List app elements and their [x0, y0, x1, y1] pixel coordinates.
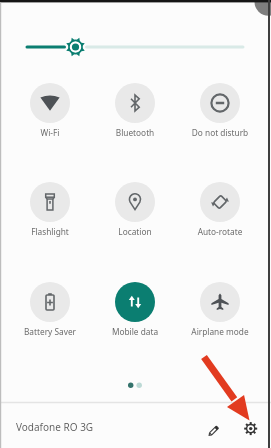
button[interactable]: Bluetooth — [93, 83, 177, 138]
staticText: Bluetooth — [93, 127, 177, 138]
button[interactable]: Airplane mode — [178, 282, 262, 337]
button[interactable] — [203, 417, 227, 441]
staticText: Flashlight — [8, 226, 92, 237]
button[interactable]: Flashlight — [8, 182, 92, 237]
button[interactable]: Battery Saver — [8, 282, 92, 337]
staticText: Wi-Fi — [8, 127, 92, 138]
button[interactable] — [20, 32, 251, 62]
button[interactable]: Location — [93, 182, 177, 237]
button[interactable]: Wi-Fi — [8, 83, 92, 138]
staticText: Airplane mode — [178, 326, 262, 337]
button[interactable]: Auto-rotate — [178, 182, 262, 237]
staticText: Vodafone RO 3G — [16, 420, 94, 434]
staticText: Battery Saver — [8, 326, 92, 337]
staticText: Auto-rotate — [178, 226, 262, 237]
button[interactable]: Do not disturb — [178, 83, 262, 138]
button[interactable] — [239, 417, 263, 441]
button[interactable]: Mobile data — [93, 282, 177, 337]
staticText: Do not disturb — [178, 127, 262, 138]
staticText: Location — [93, 226, 177, 237]
staticText: Mobile data — [93, 326, 177, 337]
